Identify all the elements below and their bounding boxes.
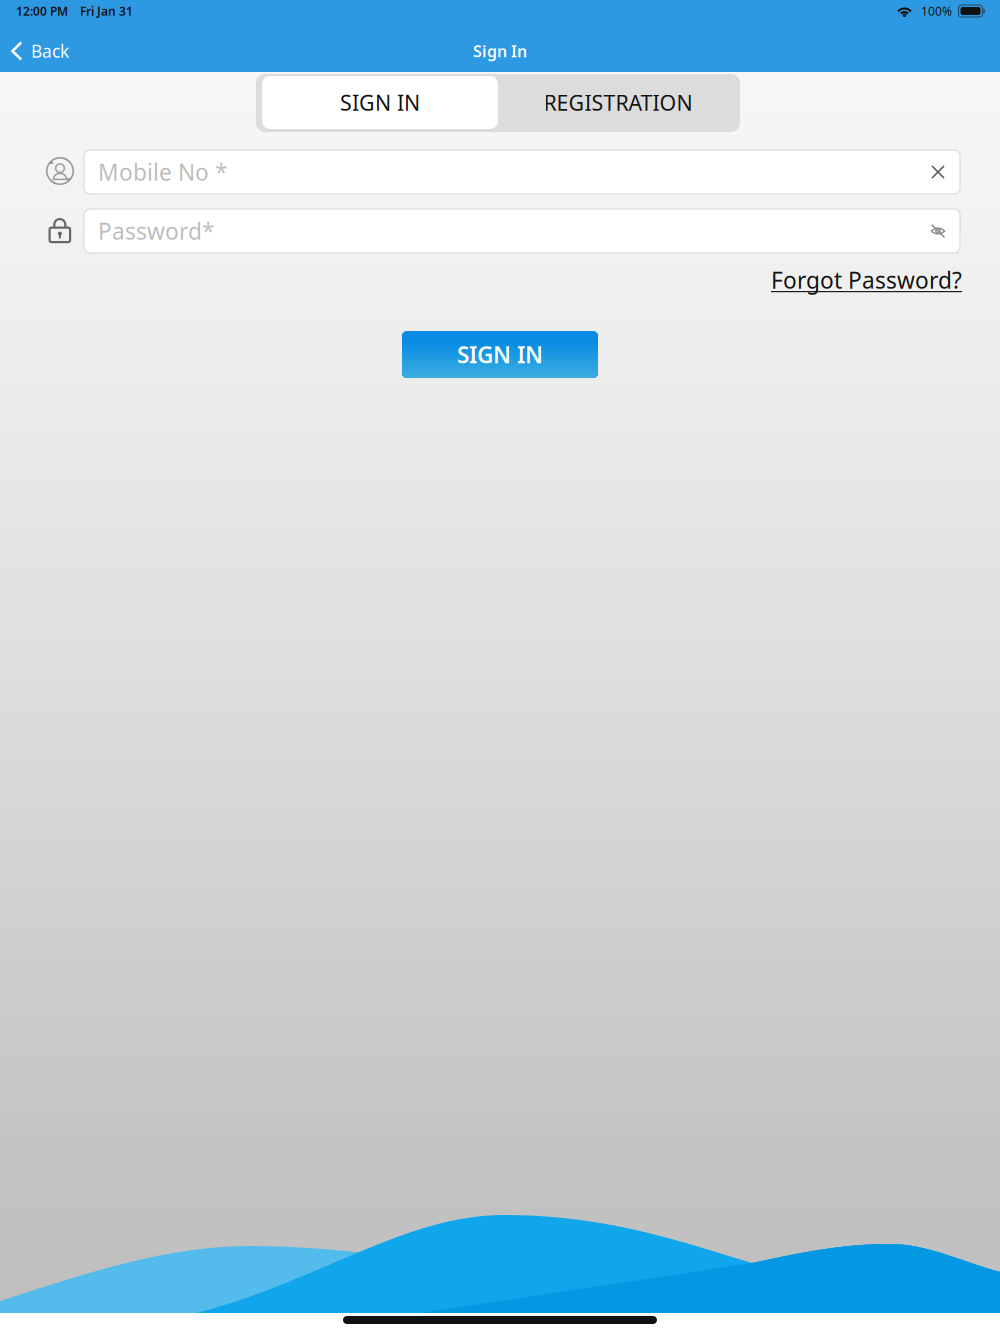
staticText: REGISTRATION [543, 88, 692, 117]
staticText: 100% [921, 3, 952, 19]
button[interactable]: Password* [84, 209, 960, 253]
staticText: 12:00 PM [16, 3, 68, 19]
button[interactable]: Forgot Password? [771, 262, 1000, 298]
staticText: Back [31, 39, 69, 62]
staticText: Sign In [473, 40, 527, 62]
button[interactable]: Back [0, 30, 85, 72]
staticText: Mobile No * [98, 157, 227, 187]
button[interactable]: SIGN IN [402, 331, 598, 378]
button[interactable]: Mobile No * [84, 150, 960, 194]
button[interactable]: SIGN IN [262, 76, 498, 129]
staticText: Password* [98, 216, 214, 246]
button[interactable]: Show password [916, 209, 960, 253]
staticText: SIGN IN [340, 88, 420, 117]
button[interactable]: Clear text [916, 150, 960, 194]
staticText: Forgot Password? [771, 265, 962, 295]
staticText: Fri Jan 31 [80, 3, 133, 19]
staticText: SIGN IN [457, 339, 543, 369]
button[interactable]: REGISTRATION [500, 76, 736, 129]
